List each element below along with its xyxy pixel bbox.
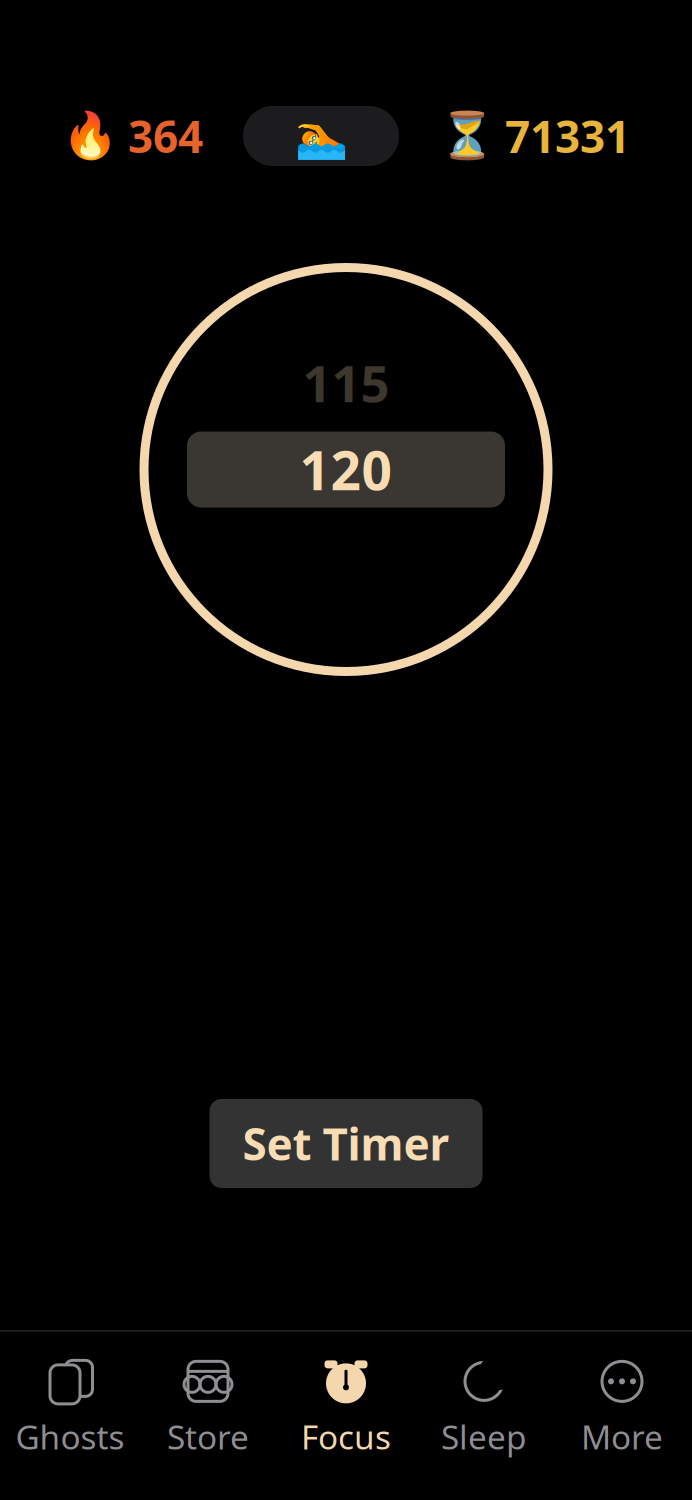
button[interactable]: More xyxy=(553,1356,691,1460)
staticText: 364 xyxy=(128,107,203,165)
staticText: Focus xyxy=(301,1414,391,1459)
staticText: Ghosts xyxy=(15,1414,124,1459)
staticText: Store xyxy=(167,1414,249,1459)
staticText: 120 xyxy=(299,434,392,505)
button[interactable]: 🔥 xyxy=(62,107,203,165)
button[interactable]: Focus xyxy=(277,1356,415,1460)
button[interactable]: Ghosts xyxy=(1,1356,139,1460)
staticText: Set Timer xyxy=(242,1114,449,1173)
staticText: ⏳ xyxy=(439,110,495,162)
button[interactable]: Sleep xyxy=(415,1356,553,1460)
button[interactable]: Set Timer xyxy=(209,1099,482,1188)
staticText: More xyxy=(581,1414,663,1459)
staticText: 🏊 xyxy=(294,112,347,160)
staticText: 🔥 xyxy=(62,110,118,162)
staticText: 115 xyxy=(302,349,389,416)
button[interactable]: Activity xyxy=(243,106,399,166)
staticText: Sleep xyxy=(441,1414,527,1459)
button[interactable]: ⏳ xyxy=(439,107,630,165)
staticText: 71331 xyxy=(505,107,630,165)
button[interactable]: Store xyxy=(139,1356,277,1460)
